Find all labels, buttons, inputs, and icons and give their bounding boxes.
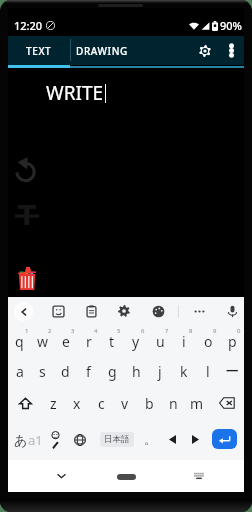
button[interactable]: ー — [220, 356, 244, 387]
staticText: h — [132, 362, 141, 381]
button[interactable]: More — [188, 300, 210, 322]
staticText: d — [61, 362, 70, 381]
button[interactable]: Settings — [191, 36, 218, 65]
staticText: 4 — [94, 327, 98, 335]
staticText: g — [108, 362, 117, 381]
staticText: 。 — [144, 432, 156, 447]
button[interactable]: a — [8, 356, 31, 387]
button[interactable]: l — [196, 356, 220, 387]
button[interactable]: Home — [106, 460, 146, 492]
button[interactable]: Voice input — [221, 300, 243, 322]
button[interactable]: More options — [219, 36, 244, 65]
staticText: e — [62, 332, 70, 351]
staticText: w — [37, 332, 49, 351]
button[interactable]: b — [137, 387, 161, 419]
button[interactable]: Enter — [212, 429, 237, 449]
button[interactable]: Back — [14, 302, 33, 321]
staticText: f — [86, 362, 91, 381]
button[interactable]: 。 — [139, 419, 160, 460]
staticText: p — [228, 332, 237, 351]
button[interactable]: v — [113, 387, 137, 419]
button[interactable]: x — [65, 387, 89, 419]
staticText: 12:20 — [14, 18, 43, 33]
button[interactable]: Emoji — [44, 419, 67, 460]
staticText: WRITE — [46, 80, 104, 106]
staticText: b — [145, 394, 154, 413]
button[interactable]: DRAWING — [70, 36, 133, 65]
button[interactable]: Switch keyboard — [179, 460, 219, 492]
button[interactable]: e — [54, 325, 77, 356]
staticText: x — [73, 394, 81, 413]
staticText: k — [180, 362, 188, 381]
button[interactable]: k — [172, 356, 196, 387]
button[interactable]: j — [148, 356, 172, 387]
button[interactable]: g — [100, 356, 124, 387]
button[interactable]: y — [124, 325, 148, 356]
staticText: l — [206, 362, 210, 381]
button[interactable]: t — [100, 325, 124, 356]
staticText: 0 — [237, 327, 241, 335]
staticText: m — [190, 394, 204, 413]
button[interactable]: u — [148, 325, 172, 356]
button[interactable]: Themes — [147, 300, 169, 322]
staticText: a — [16, 362, 24, 381]
button[interactable]: f — [77, 356, 100, 387]
button[interactable]: c — [89, 387, 113, 419]
button[interactable]: z — [42, 387, 65, 419]
button[interactable]: q — [8, 325, 31, 356]
button[interactable]: p — [220, 325, 244, 356]
staticText: s — [39, 362, 46, 381]
button[interactable]: Backspace — [209, 387, 244, 419]
staticText: z — [50, 394, 57, 413]
staticText: 90% — [220, 18, 242, 33]
staticText: あ — [14, 432, 28, 448]
staticText: TEXT — [26, 44, 52, 58]
staticText: q — [15, 332, 24, 351]
staticText: o — [204, 332, 213, 351]
button[interactable]: o — [196, 325, 220, 356]
button[interactable]: Space — [92, 419, 141, 460]
staticText: 7 — [165, 327, 169, 335]
button[interactable]: s — [31, 356, 54, 387]
button[interactable]: Delete — [11, 262, 43, 294]
button[interactable]: Align vertical centre — [11, 199, 43, 231]
staticText: n — [169, 394, 178, 413]
staticText: u — [156, 332, 165, 351]
staticText: 5 — [117, 327, 121, 335]
button[interactable]: TEXT — [8, 36, 70, 65]
button[interactable]: d — [54, 356, 77, 387]
button[interactable]: Undo — [9, 153, 41, 185]
button[interactable]: Move cursor right — [185, 419, 206, 460]
button[interactable]: n — [161, 387, 185, 419]
staticText: DRAWING — [76, 44, 128, 58]
button[interactable]: Shift — [8, 387, 42, 419]
button[interactable]: r — [77, 325, 100, 356]
staticText: v — [121, 394, 129, 413]
button[interactable]: Hide keyboard — [41, 460, 81, 492]
button[interactable]: w — [31, 325, 54, 356]
staticText: 8 — [189, 327, 193, 335]
staticText: 6 — [141, 327, 145, 335]
staticText: a1 — [28, 431, 43, 449]
button[interactable]: Keyboard settings — [113, 300, 135, 322]
button[interactable]: Clipboard — [80, 300, 102, 322]
staticText: c — [98, 394, 105, 413]
staticText: 2 — [48, 327, 52, 335]
button[interactable]: Switch input mode — [8, 419, 48, 460]
staticText: 日本語 — [104, 434, 130, 445]
button[interactable]: i — [172, 325, 196, 356]
staticText: i — [182, 332, 186, 351]
staticText: t — [109, 332, 115, 351]
button[interactable]: h — [124, 356, 148, 387]
staticText: 3 — [71, 327, 75, 335]
button[interactable]: Move cursor left — [162, 419, 183, 460]
staticText: 1 — [25, 327, 29, 335]
staticText: j — [158, 362, 162, 381]
button[interactable]: Stickers — [47, 300, 69, 322]
button[interactable]: Change keyboard — [68, 419, 91, 460]
staticText: y — [132, 332, 140, 351]
button[interactable]: m — [185, 387, 209, 419]
staticText: r — [86, 332, 92, 351]
staticText: 9 — [213, 327, 217, 335]
staticText: ー — [225, 363, 239, 381]
